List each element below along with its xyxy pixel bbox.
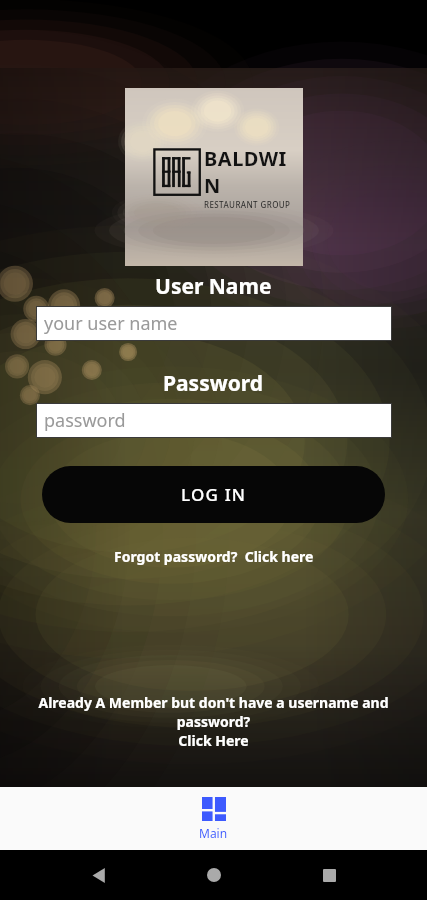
button[interactable]: Back bbox=[81, 858, 115, 892]
staticText: User Name bbox=[155, 272, 272, 301]
staticText: password bbox=[44, 408, 126, 433]
button[interactable]: Forgot password? Click here bbox=[106, 545, 322, 568]
staticText: Already A Member but don't have a userna… bbox=[6, 693, 421, 750]
button[interactable]: Main bbox=[173, 793, 254, 845]
staticText: BALDWIN bbox=[204, 145, 303, 199]
staticText: Main bbox=[199, 825, 228, 841]
staticText: RESTAURANT GROUP bbox=[204, 199, 291, 210]
staticText: LOG IN bbox=[181, 483, 247, 506]
staticText: your user name bbox=[44, 311, 178, 336]
button[interactable]: LOG IN bbox=[42, 466, 385, 523]
staticText: Password bbox=[163, 369, 264, 398]
button[interactable]: Recent apps bbox=[312, 858, 346, 892]
button[interactable]: your user name bbox=[37, 307, 391, 340]
button[interactable]: Home bbox=[197, 858, 231, 892]
button[interactable]: password bbox=[37, 404, 391, 437]
staticText: Forgot password? Click here bbox=[114, 547, 314, 566]
other: Main bbox=[202, 797, 226, 821]
button[interactable]: Already A Member but don't have a userna… bbox=[0, 693, 427, 750]
button[interactable]: BALDWIN bbox=[125, 88, 303, 266]
